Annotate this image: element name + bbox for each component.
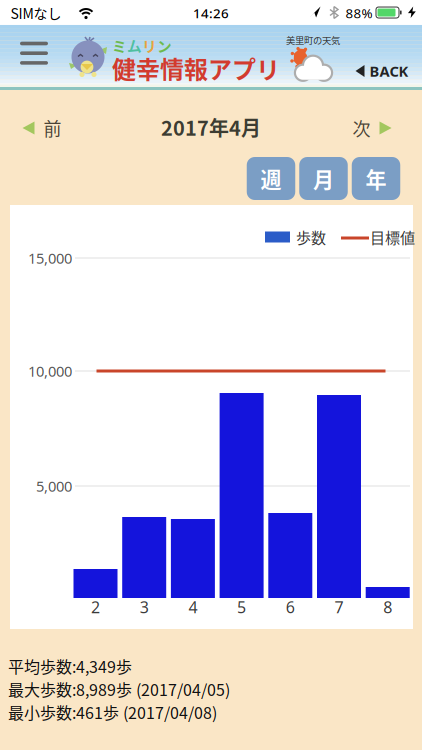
staticText: 週 (260, 163, 281, 194)
staticText: 8 (383, 596, 392, 618)
staticText: 4 (188, 596, 197, 618)
staticText: 5 (237, 596, 246, 618)
staticText: 健幸情報アプリ (112, 51, 280, 85)
staticText: 歩数 (296, 226, 326, 248)
button[interactable]: 美里町の天気 (Weather) (286, 33, 340, 81)
staticText: ミ (112, 35, 127, 56)
staticText: 平均歩数:4,349歩 (8, 654, 132, 678)
staticText: 年 (365, 163, 386, 194)
staticText: 7 (334, 596, 343, 618)
button[interactable]: Back (355, 61, 408, 81)
button[interactable]: 週 (247, 157, 295, 200)
staticText: 14:26 (193, 4, 229, 22)
staticText: 目標値 (370, 226, 415, 248)
button[interactable]: 年 (352, 157, 400, 200)
staticText: リ (142, 35, 157, 56)
staticText: 美里町の天気 (286, 33, 340, 47)
staticText: 3 (140, 596, 149, 618)
staticText: 5,000 (36, 476, 72, 496)
button[interactable]: 次 (352, 115, 391, 141)
staticText: 次 (352, 115, 370, 141)
button[interactable]: Menu (12, 33, 56, 73)
staticText: 2 (91, 596, 100, 618)
staticText: 前 (43, 115, 61, 141)
staticText: 15,000 (28, 248, 72, 268)
staticText: BACK (369, 61, 408, 81)
staticText: 最大歩数:8,989歩 (2017/04/05) (8, 677, 230, 701)
staticText: ム (127, 35, 142, 56)
staticText: ン (157, 35, 172, 56)
button[interactable]: 月 (299, 157, 348, 200)
button[interactable]: 前 (22, 115, 61, 141)
staticText: 最小歩数:461歩 (2017/04/08) (8, 700, 217, 724)
staticText: 2017年4月 (161, 112, 261, 141)
staticText: 月 (313, 163, 334, 194)
staticText: 10,000 (28, 361, 72, 381)
staticText: 6 (286, 596, 295, 618)
staticText: 88% (345, 4, 372, 22)
staticText: SIMなし (10, 3, 61, 23)
